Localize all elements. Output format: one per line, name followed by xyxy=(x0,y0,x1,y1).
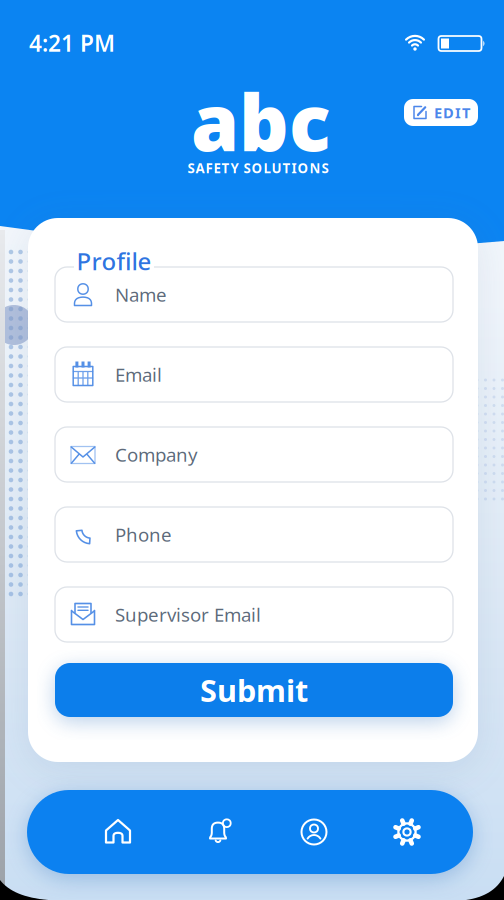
staticText: Submit xyxy=(200,670,308,710)
staticText: Email xyxy=(115,362,162,387)
staticText: abc xyxy=(191,70,331,172)
staticText: Phone xyxy=(115,522,172,547)
staticText: S A F E T Y S O L U T I O N S xyxy=(187,159,328,177)
staticText: Profile xyxy=(76,245,151,277)
staticText: Supervisor Email xyxy=(115,602,261,627)
staticText: Company xyxy=(115,442,198,467)
button[interactable]: Company xyxy=(55,427,453,482)
button[interactable]: Supervisor Email xyxy=(55,587,453,642)
staticText: E D I T xyxy=(434,103,470,122)
button[interactable]: Profile xyxy=(267,790,361,874)
button[interactable]: Submit xyxy=(55,663,453,717)
button[interactable]: Name xyxy=(55,267,453,322)
button[interactable]: Settings xyxy=(360,790,454,874)
staticText: 4:21 PM xyxy=(29,28,115,58)
button[interactable]: Notifications xyxy=(172,790,266,874)
button[interactable]: E D I T xyxy=(404,99,478,126)
button[interactable]: Phone xyxy=(55,507,453,562)
button[interactable]: Home xyxy=(71,790,165,874)
button[interactable]: Email xyxy=(55,347,453,402)
staticText: Name xyxy=(115,282,167,307)
